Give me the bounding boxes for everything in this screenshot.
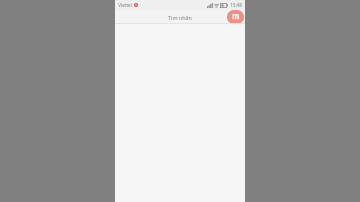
staticText: Tìm nhãn <box>168 14 192 21</box>
staticText: 15:48 <box>230 2 242 8</box>
button[interactable]: Profile <box>227 10 244 24</box>
staticText: Viettel <box>118 2 132 8</box>
